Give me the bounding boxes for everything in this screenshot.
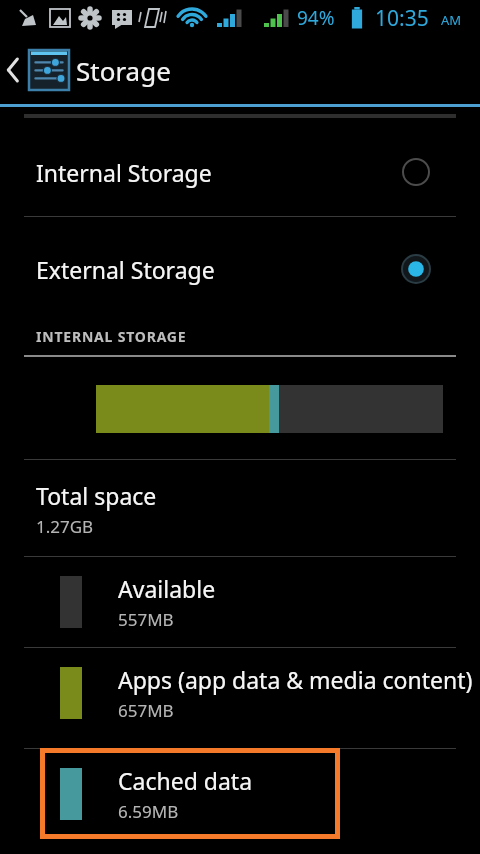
button[interactable]: Internal Storage xyxy=(0,128,480,216)
staticText: 657MB xyxy=(118,699,174,722)
staticText: 557MB xyxy=(118,608,174,631)
staticText: 10:35 xyxy=(375,4,429,33)
staticText: AM xyxy=(441,11,462,29)
staticText: Internal Storage xyxy=(36,157,212,188)
staticText: Storage xyxy=(76,53,171,88)
button[interactable]: Cached data xyxy=(0,749,480,839)
button[interactable]: External Storage xyxy=(0,225,480,313)
button[interactable]: Back xyxy=(0,45,28,95)
staticText: 94% xyxy=(297,5,335,31)
staticText: Apps (app data & media content) xyxy=(118,664,473,695)
staticText: External Storage xyxy=(36,254,215,285)
staticText: Cached data xyxy=(118,765,253,796)
button[interactable]: Apps (app data & media content) xyxy=(0,648,480,738)
button[interactable]: Available xyxy=(0,557,480,647)
staticText: 1.27GB xyxy=(36,515,94,538)
staticText: 6.59MB xyxy=(118,800,179,823)
staticText: INTERNAL STORAGE xyxy=(36,327,187,346)
button[interactable]: Total space xyxy=(0,460,480,556)
staticText: Available xyxy=(118,573,216,604)
staticText: Total space xyxy=(36,480,157,511)
